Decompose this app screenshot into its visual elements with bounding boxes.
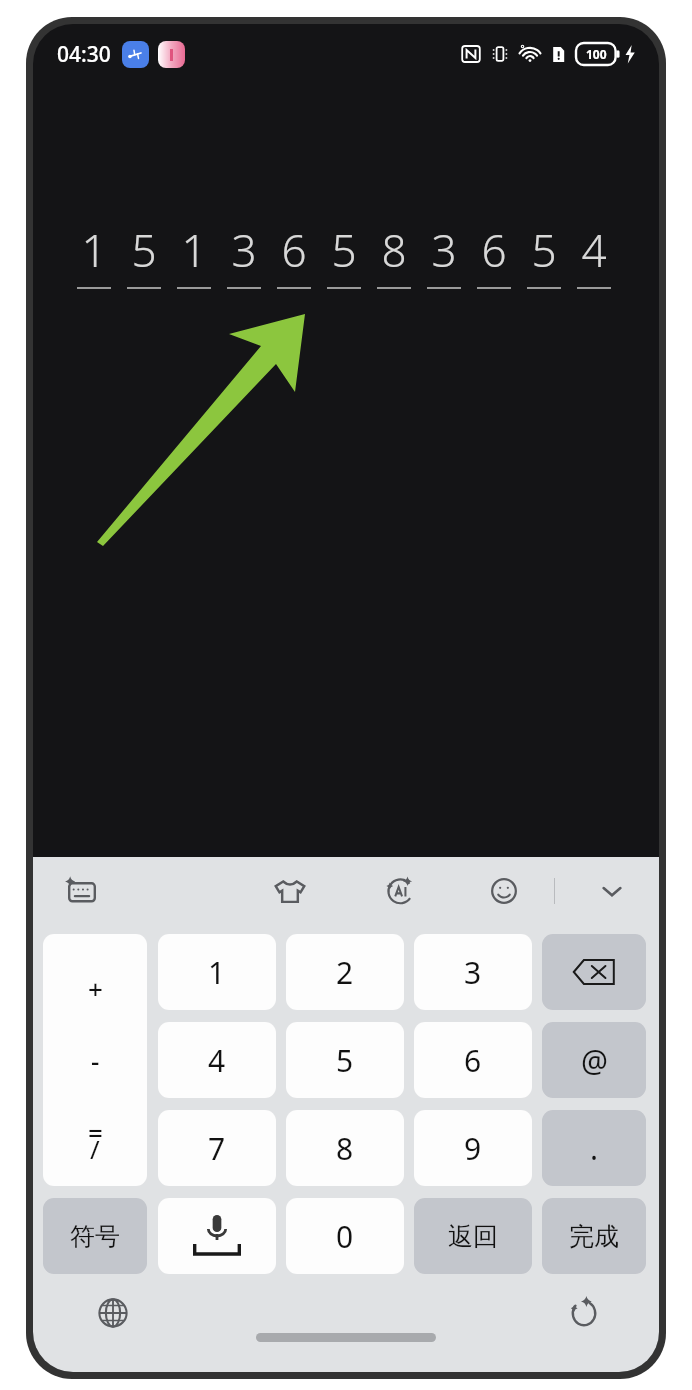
staticText: 3 — [419, 220, 469, 280]
staticText: 100 — [586, 46, 607, 62]
staticText: 8 — [369, 220, 419, 280]
staticText: 7 — [208, 1128, 226, 1169]
button[interactable]: 符号 — [43, 1198, 147, 1274]
staticText: + — [88, 971, 103, 1006]
staticText: 6 — [464, 1040, 482, 1081]
staticText: 0 — [336, 1216, 354, 1257]
button[interactable]: 9 — [414, 1110, 532, 1186]
button[interactable]: 3 — [414, 934, 532, 1010]
button[interactable]: AI assist — [377, 868, 423, 914]
button[interactable]: 完成 — [542, 1198, 646, 1274]
staticText: . — [590, 1128, 599, 1169]
staticText: 5 — [119, 220, 169, 280]
staticText: 1 — [69, 220, 119, 280]
button[interactable]: 6 — [414, 1022, 532, 1098]
button[interactable]: 4 — [158, 1022, 276, 1098]
button[interactable]: 7 — [158, 1110, 276, 1186]
staticText: @ — [581, 1040, 608, 1081]
staticText: 返回 — [448, 1221, 498, 1252]
staticText: 9 — [464, 1128, 482, 1169]
button[interactable]: + — [43, 934, 147, 1186]
staticText: 完成 — [569, 1221, 619, 1252]
staticText: 2 — [336, 952, 354, 993]
staticText: 5 — [319, 220, 369, 280]
button[interactable]: Undo — [557, 1287, 609, 1339]
staticText: 1 — [169, 220, 219, 280]
staticText: / — [90, 1131, 100, 1166]
button[interactable]: 0 — [286, 1198, 404, 1274]
staticText: 1 — [208, 952, 226, 993]
button[interactable]: Space, voice input — [158, 1198, 276, 1274]
staticText: 3 — [464, 952, 482, 993]
button[interactable]: Change language — [87, 1287, 139, 1339]
button[interactable]: 8 — [286, 1110, 404, 1186]
button[interactable]: @ — [542, 1022, 646, 1098]
staticText: 6 — [469, 220, 519, 280]
button[interactable]: Theme — [267, 868, 313, 914]
button[interactable]: Emoji — [481, 868, 527, 914]
staticText: 5 — [336, 1040, 354, 1081]
staticText: 3 — [219, 220, 269, 280]
button[interactable]: Hide keyboard — [589, 868, 635, 914]
button[interactable]: Backspace — [542, 934, 646, 1010]
button[interactable]: 返回 — [414, 1198, 532, 1274]
button[interactable]: 2 — [286, 934, 404, 1010]
button[interactable]: 5 — [286, 1022, 404, 1098]
staticText: 4 — [208, 1040, 226, 1081]
staticText: = — [88, 1114, 103, 1149]
staticText: 8 — [336, 1128, 354, 1169]
staticText: - — [91, 1043, 100, 1078]
button[interactable]: . — [542, 1110, 646, 1186]
staticText: 6 — [269, 220, 319, 280]
staticText: 4 — [569, 220, 619, 280]
staticText: 5 — [519, 220, 569, 280]
staticText: 04:30 — [57, 40, 111, 69]
button[interactable]: Smart keyboard — [59, 868, 105, 914]
button[interactable]: 1 — [158, 934, 276, 1010]
staticText: 符号 — [70, 1221, 120, 1252]
